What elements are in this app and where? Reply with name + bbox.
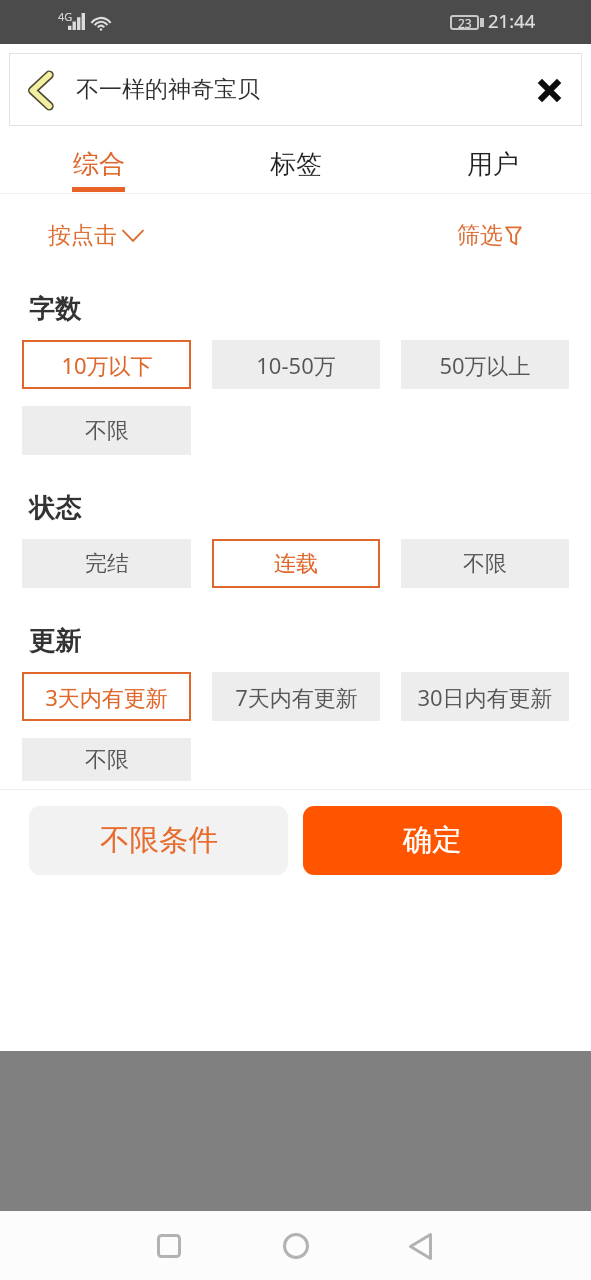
staticText: 确定 xyxy=(403,822,462,859)
button[interactable]: 标签 xyxy=(197,130,394,194)
button[interactable]: 确定 xyxy=(303,806,562,875)
button[interactable]: 7天内有更新 xyxy=(212,672,380,721)
staticText: 按点击 xyxy=(48,221,117,250)
staticText: 状态 xyxy=(29,492,81,525)
staticText: 筛选 xyxy=(457,221,503,250)
staticText: 连载 xyxy=(274,550,318,578)
button[interactable]: Back xyxy=(15,65,65,115)
button[interactable]: Clear search xyxy=(525,66,573,114)
button[interactable]: 不限 xyxy=(22,406,191,455)
staticText: 不限 xyxy=(85,746,129,774)
button[interactable]: 用户 xyxy=(394,130,591,194)
button[interactable]: 连载 xyxy=(212,539,380,588)
button[interactable]: 30日内有更新 xyxy=(401,672,569,721)
button[interactable]: 不限 xyxy=(22,738,191,781)
staticText: 30日内有更新 xyxy=(417,682,553,712)
button[interactable]: Recent apps xyxy=(140,1217,198,1275)
staticText: 7天内有更新 xyxy=(235,682,358,712)
staticText: 不限 xyxy=(85,417,129,445)
button[interactable]: 10万以下 xyxy=(22,340,191,389)
staticText: 更新 xyxy=(29,625,81,658)
button[interactable]: 综合 xyxy=(0,130,197,194)
staticText: 综合 xyxy=(73,148,125,181)
staticText: 不一样的神奇宝贝 xyxy=(76,75,260,104)
button[interactable]: 10-50万 xyxy=(212,340,380,389)
staticText: 10-50万 xyxy=(256,350,336,380)
staticText: 完结 xyxy=(85,550,129,578)
button[interactable]: 50万以上 xyxy=(401,340,569,389)
staticText: 10万以下 xyxy=(61,350,153,380)
button[interactable]: 不限条件 xyxy=(29,806,288,875)
staticText: 3天内有更新 xyxy=(45,682,168,712)
button[interactable]: 按点击 xyxy=(48,221,144,250)
staticText: 23 xyxy=(458,15,472,30)
staticText: 字数 xyxy=(29,293,81,326)
button[interactable]: Home xyxy=(267,1217,325,1275)
staticText: 21:44 xyxy=(488,8,536,33)
button[interactable]: 3天内有更新 xyxy=(22,672,191,721)
staticText: 不限 xyxy=(463,550,507,578)
button[interactable]: Back xyxy=(391,1217,449,1275)
staticText: 标签 xyxy=(270,148,322,181)
button[interactable]: 筛选 xyxy=(457,221,522,250)
staticText: 用户 xyxy=(467,148,519,181)
button[interactable]: 完结 xyxy=(22,539,191,588)
staticText: 不限条件 xyxy=(100,822,218,859)
staticText: 50万以上 xyxy=(439,350,531,380)
staticText: 4G xyxy=(58,9,73,24)
button[interactable]: 不限 xyxy=(401,539,569,588)
